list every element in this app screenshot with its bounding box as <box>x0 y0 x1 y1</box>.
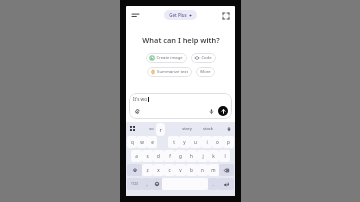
button[interactable]: Menu <box>130 10 141 21</box>
staticText: n <box>201 167 204 173</box>
button[interactable]: c <box>164 164 175 176</box>
button[interactable]: . <box>208 178 218 190</box>
button[interactable]: p <box>223 136 234 148</box>
button[interactable]: Attach file <box>133 107 142 116</box>
staticText: story <box>182 126 192 131</box>
button[interactable]: Enter <box>218 178 234 190</box>
button[interactable]: e <box>147 136 157 148</box>
button[interactable]: Voice typing <box>224 124 233 133</box>
staticText: . <box>212 181 214 187</box>
staticText: t <box>173 139 175 145</box>
staticText: More <box>200 69 211 75</box>
staticText: a <box>135 153 138 159</box>
button[interactable]: n <box>197 164 208 176</box>
staticText: l <box>224 153 226 159</box>
staticText: ?123 <box>131 182 138 186</box>
staticText: g <box>179 153 182 159</box>
staticText: i <box>206 139 208 145</box>
button[interactable]: q <box>127 136 137 148</box>
staticText: f <box>169 153 171 159</box>
staticText: s <box>146 153 149 159</box>
button[interactable]: Send <box>218 106 228 116</box>
staticText: j <box>202 153 204 159</box>
button[interactable]: Keyboard menu <box>128 124 137 133</box>
button[interactable]: m <box>208 164 219 176</box>
button[interactable]: b <box>186 164 197 176</box>
staticText: , <box>146 181 148 187</box>
staticText: v <box>179 167 182 173</box>
button[interactable]: l <box>219 150 230 162</box>
button[interactable]: y <box>179 136 190 148</box>
staticText: o <box>216 139 219 145</box>
staticText: What can I help with? <box>142 35 220 45</box>
button[interactable]: Shift <box>127 164 142 176</box>
button[interactable]: v <box>175 164 186 176</box>
staticText: r <box>159 126 162 133</box>
staticText: Create image <box>156 55 183 61</box>
staticText: d <box>157 153 160 159</box>
button[interactable]: Backspace <box>219 164 234 176</box>
button[interactable]: k <box>208 150 219 162</box>
staticText: It's wo <box>133 96 147 102</box>
button[interactable]: s <box>142 150 153 162</box>
staticText: so <box>149 126 154 131</box>
staticText: Summarize text <box>157 69 188 75</box>
button[interactable]: u <box>190 136 201 148</box>
button[interactable]: x <box>153 164 164 176</box>
button[interactable]: w <box>137 136 147 148</box>
button[interactable]: z <box>142 164 153 176</box>
button[interactable]: a <box>131 150 142 162</box>
button[interactable]: , <box>142 178 152 190</box>
staticText: x <box>157 167 160 173</box>
button[interactable]: More <box>196 67 215 77</box>
button[interactable]: Emoji <box>152 178 162 190</box>
button[interactable]: g <box>175 150 186 162</box>
staticText: h <box>190 153 193 159</box>
button[interactable]: ?123 <box>127 178 142 190</box>
staticText: u <box>194 139 197 145</box>
button[interactable]: Create image <box>146 53 187 63</box>
button[interactable]: i <box>201 136 212 148</box>
staticText: p <box>227 139 230 145</box>
button[interactable]: Get Plus <box>164 10 197 20</box>
staticText: m <box>211 167 216 173</box>
button[interactable]: Code <box>191 53 216 63</box>
staticText: Get Plus <box>169 12 187 18</box>
staticText: c <box>168 167 171 173</box>
staticText: e <box>151 139 154 145</box>
staticText: k <box>212 153 215 159</box>
button[interactable]: Summarize text <box>147 67 192 77</box>
button[interactable]: o <box>212 136 223 148</box>
button[interactable]: t <box>168 136 179 148</box>
staticText: w <box>140 139 144 145</box>
staticText: z <box>146 167 149 173</box>
button[interactable]: d <box>153 150 164 162</box>
button[interactable]: f <box>164 150 175 162</box>
button[interactable]: New chat <box>220 10 231 21</box>
button[interactable]: Voice input <box>207 107 216 116</box>
staticText: q <box>131 139 134 145</box>
staticText: stock <box>203 126 213 131</box>
staticText: y <box>183 139 186 145</box>
button[interactable]: h <box>186 150 197 162</box>
staticText: Code <box>201 55 212 61</box>
button[interactable]: j <box>197 150 208 162</box>
staticText: b <box>190 167 193 173</box>
